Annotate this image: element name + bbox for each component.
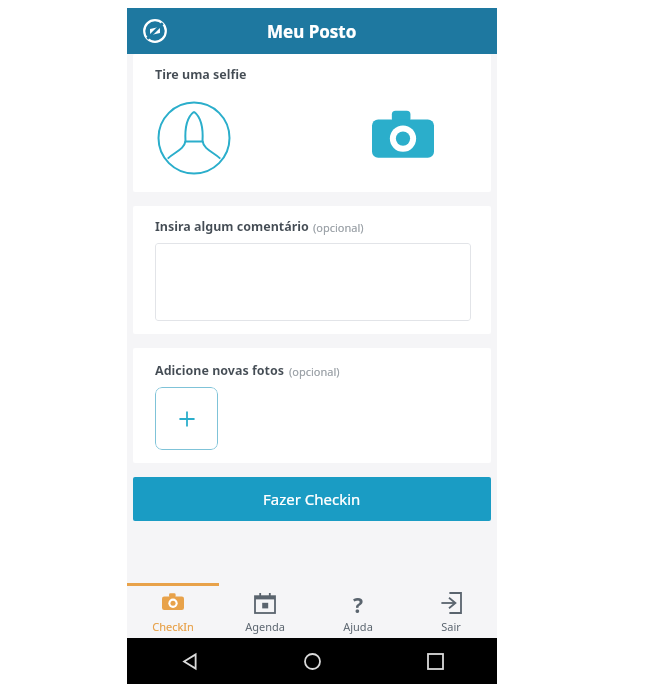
button[interactable]: Sair xyxy=(404,586,497,638)
staticText: Sair xyxy=(441,619,461,634)
button[interactable]: Menu xyxy=(137,13,173,49)
staticText: CheckIn xyxy=(152,619,194,634)
staticText: (opcional) xyxy=(289,364,340,379)
button[interactable]: Agenda xyxy=(219,586,311,638)
button[interactable]: Home xyxy=(251,638,374,684)
button[interactable]: Take photo xyxy=(365,100,441,176)
staticText: Insira algum comentário xyxy=(155,218,309,235)
staticText: ? xyxy=(353,591,364,615)
button[interactable]: CheckIn xyxy=(127,586,219,638)
staticText: Agenda xyxy=(245,619,285,634)
staticText: Ajuda xyxy=(343,619,373,634)
button[interactable]: Add photo xyxy=(155,387,218,450)
staticText: Adicione novas fotos xyxy=(155,362,285,379)
staticText: (opcional) xyxy=(313,220,364,235)
staticText: Fazer Checkin xyxy=(263,489,361,509)
button[interactable]: Back xyxy=(127,638,251,684)
button[interactable]: ? xyxy=(311,586,404,638)
button[interactable]: Recents xyxy=(374,638,497,684)
button[interactable]: Comment field xyxy=(155,243,471,321)
staticText: Tire uma selfie xyxy=(155,66,247,83)
button[interactable]: Selfie preview xyxy=(155,99,233,177)
staticText: Meu Posto xyxy=(267,20,357,43)
button[interactable]: Fazer Checkin xyxy=(133,477,491,521)
